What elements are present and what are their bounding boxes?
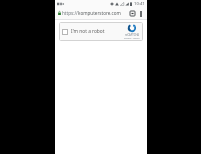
button[interactable]: https:// <box>58 7 127 19</box>
staticText: reCAPTCHA <box>125 33 139 37</box>
button[interactable]: Tab switcher <box>128 9 137 18</box>
button[interactable]: More options <box>137 10 144 17</box>
button[interactable]: I'm not a robot <box>59 22 143 41</box>
staticText: 10:41 <box>134 1 145 7</box>
staticText: https:// <box>62 10 78 16</box>
staticText: komputerstore.com <box>78 10 121 16</box>
staticText: I'm not a robot <box>71 28 105 35</box>
staticText: Privacy - Terms <box>124 37 140 40</box>
